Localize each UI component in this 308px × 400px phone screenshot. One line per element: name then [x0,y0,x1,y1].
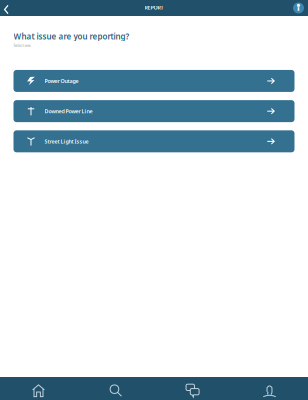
button[interactable]: Search [77,377,154,400]
button[interactable]: Downed Power Line [13,100,294,122]
staticText: REPORT [144,4,163,11]
staticText: Select one. [13,43,31,48]
staticText: What issue are you reporting? [13,31,129,42]
button[interactable]: Home [0,377,77,400]
button[interactable]: Power Outage [13,70,294,92]
button[interactable]: Back [0,0,13,16]
button[interactable]: Messages [154,377,231,400]
button[interactable]: Street Light Issue [13,130,294,152]
button[interactable]: Information [291,0,306,16]
button[interactable]: Profile [231,377,308,400]
staticText: Street Light Issue [44,138,88,145]
staticText: Downed Power Line [44,108,92,115]
staticText: Power Outage [44,77,78,84]
